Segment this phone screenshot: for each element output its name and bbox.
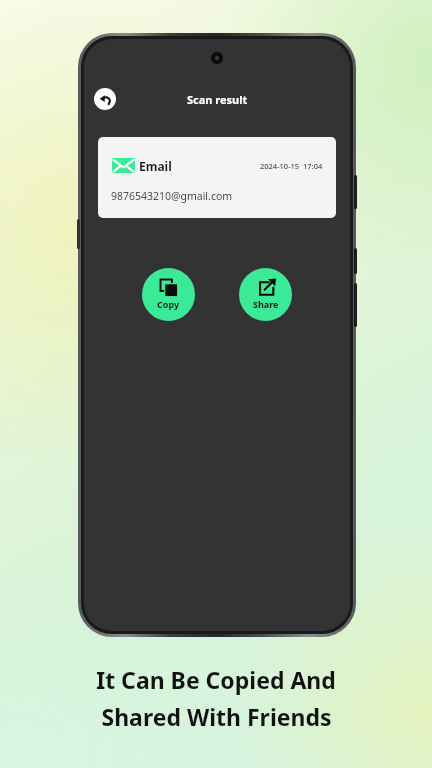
button[interactable]: Back [94, 88, 116, 110]
staticText: Shared With Friends [101, 701, 332, 732]
staticText: 9876543210@gmail.com [111, 189, 233, 203]
button[interactable]: Copy [142, 268, 195, 321]
staticText: Copy [157, 298, 180, 310]
button[interactable]: Share [239, 268, 292, 321]
staticText: Scan result [187, 92, 248, 107]
staticText: Share [253, 298, 279, 310]
staticText: 2024-10-15 17:04 [260, 161, 323, 171]
button[interactable]: Email [98, 137, 336, 218]
staticText: Email [139, 158, 172, 174]
staticText: It Can Be Copied And [96, 664, 336, 695]
